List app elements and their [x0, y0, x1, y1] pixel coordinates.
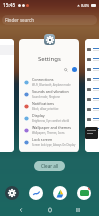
staticText: Wallpaper and themes — [32, 125, 72, 130]
staticText: 84% — [81, 3, 90, 9]
staticText: Wi-Fi, Bluetooth, Airplane mode — [32, 83, 71, 87]
button[interactable]: Display — [19, 112, 79, 124]
staticText: Settings — [38, 55, 61, 63]
staticText: Block, allow, prioritize — [32, 107, 59, 111]
staticText: Sound mode, Ringtone — [32, 95, 60, 99]
staticText: Screen lock type, Always On Display — [32, 143, 76, 147]
button[interactable]: Clear all — [34, 161, 65, 171]
staticText: Sounds and vibration — [32, 89, 69, 94]
button[interactable]: Settings app — [44, 34, 55, 45]
staticText: Connections — [32, 77, 54, 82]
button[interactable] — [85, 39, 99, 152]
staticText: 15:45 — [3, 2, 16, 9]
button[interactable]: Settings — [19, 39, 79, 152]
button[interactable]: App3 — [77, 186, 91, 200]
staticText: Notifications — [32, 101, 54, 106]
button[interactable]: Home — [43, 203, 57, 216]
button[interactable]: Sounds and vibration — [19, 88, 79, 100]
button[interactable] — [0, 39, 14, 152]
staticText: Display — [32, 113, 45, 118]
staticText: Finder search — [5, 17, 35, 23]
staticText: Brightness, Eye comfort shield — [32, 119, 70, 123]
button[interactable]: App1 — [29, 186, 43, 200]
button[interactable]: Connections — [19, 76, 79, 88]
button[interactable]: Notifications — [19, 100, 79, 112]
button[interactable]: Finder search — [5, 15, 94, 25]
button[interactable]: Back — [14, 203, 28, 216]
staticText: Clear all — [41, 163, 59, 169]
button[interactable]: Recents — [71, 203, 85, 216]
staticText: Lock screen — [32, 137, 53, 142]
button[interactable]: App2 — [53, 186, 67, 200]
button[interactable]: Wallpaper and themes — [19, 124, 79, 136]
button[interactable]: Lock screen — [19, 136, 79, 148]
button[interactable]: App0 — [5, 186, 19, 200]
staticText: Wallpapers, Themes, Icons — [32, 131, 65, 135]
